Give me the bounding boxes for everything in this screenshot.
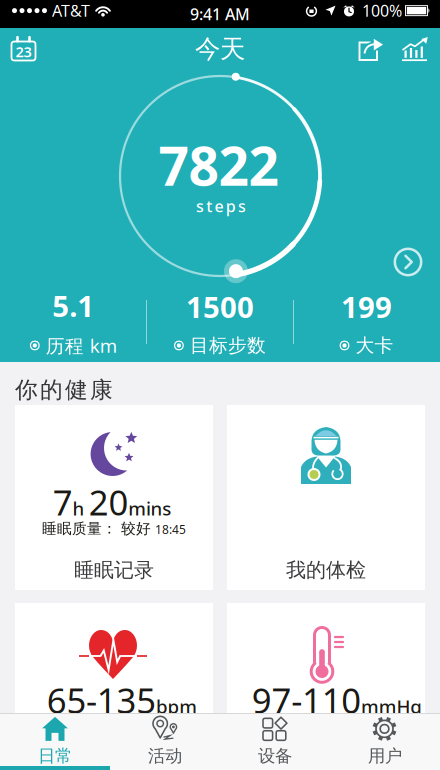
staticText: p [226, 195, 236, 217]
staticText: 1500 [186, 287, 254, 326]
staticText: AT&T [52, 0, 90, 21]
button[interactable]: History chart [392, 28, 440, 70]
staticText: 5.1 [52, 286, 94, 325]
staticText: 你的健康 [15, 376, 113, 404]
staticText: 睡眠记录 [74, 558, 154, 582]
button[interactable]: 7h 20mins [15, 405, 213, 590]
staticText: 7h 20mins [53, 479, 171, 525]
staticText: t [206, 195, 212, 217]
staticText: 7822 [158, 130, 279, 200]
button[interactable]: 1500 [147, 290, 293, 354]
staticText: 100% [362, 0, 402, 21]
button[interactable]: Calendar [0, 28, 45, 70]
staticText: 日常 [38, 745, 72, 767]
staticText: 设备 [258, 745, 292, 767]
staticText: 历程 km [46, 333, 117, 358]
staticText: 用户 [368, 745, 402, 767]
button[interactable]: Details [393, 247, 423, 277]
button[interactable]: 97-110mmHg [227, 603, 425, 770]
button[interactable]: 用户 [330, 713, 440, 769]
button[interactable]: 我的体检 [227, 405, 425, 590]
staticText: 9:41 AM [190, 3, 250, 25]
button[interactable]: 65-135bpm [15, 603, 213, 770]
staticText: 我的体检 [286, 558, 366, 582]
staticText: 65-135bpm [47, 677, 197, 723]
button[interactable]: 5.1 [0, 290, 147, 354]
staticText: 199 [341, 287, 392, 326]
button[interactable]: 活动 [110, 713, 220, 769]
button[interactable]: Share [350, 28, 392, 70]
staticText: 目标步数 [190, 334, 266, 357]
button[interactable]: 设备 [220, 713, 330, 769]
staticText: e [214, 195, 223, 217]
staticText: 活动 [148, 745, 182, 767]
button[interactable]: 日常 [0, 713, 110, 769]
staticText: s [196, 195, 204, 217]
staticText: 睡眠质量： 较好 18:45 [42, 519, 186, 537]
staticText: 大卡 [355, 334, 393, 357]
staticText: s [238, 195, 246, 217]
staticText: 23 [15, 42, 31, 61]
button[interactable]: 199 [293, 290, 440, 354]
staticText: 97-110mmHg [252, 677, 422, 723]
staticText: 今天 [195, 33, 245, 64]
